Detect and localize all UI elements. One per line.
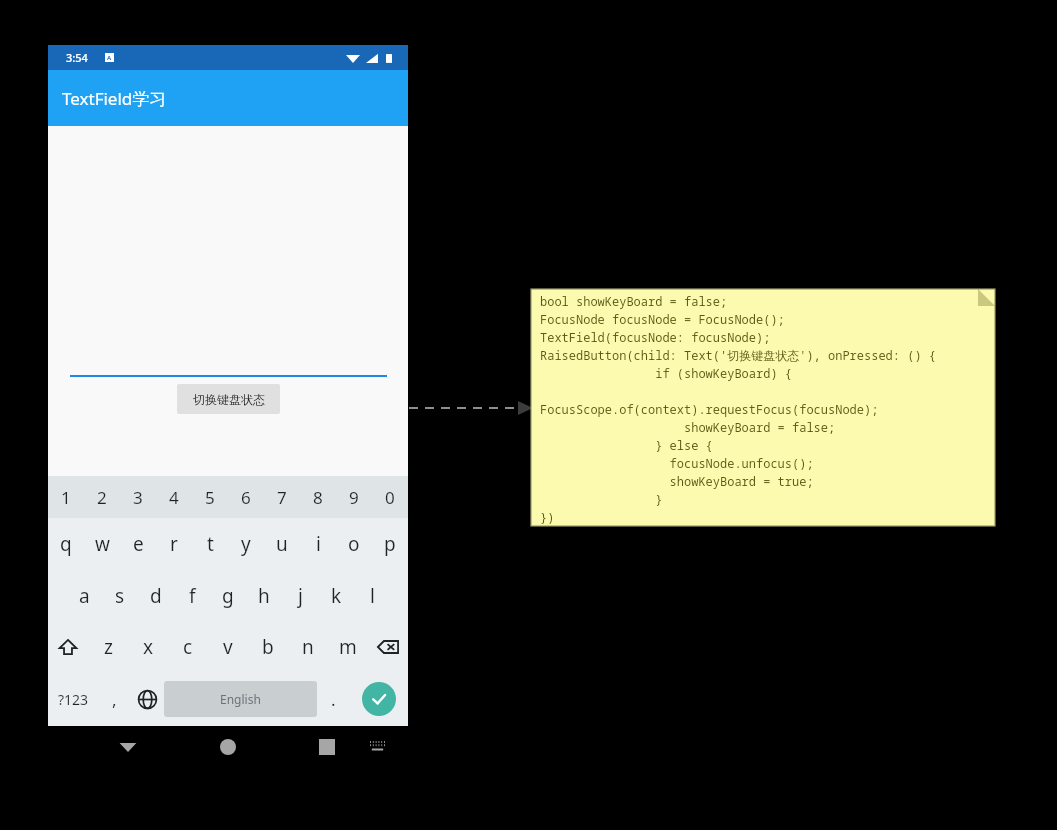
button[interactable]: Enter (350, 672, 408, 726)
staticText: y (241, 531, 251, 557)
staticText: w (95, 531, 110, 557)
staticText: . (331, 688, 336, 711)
button[interactable]: 0 (372, 476, 408, 518)
staticText: 切换键盘状态 (193, 392, 265, 407)
staticText: 3:54 (66, 50, 88, 65)
button[interactable]: English (164, 681, 317, 717)
staticText: m (339, 634, 357, 660)
button[interactable]: 8 (300, 476, 336, 518)
staticText: 7 (277, 486, 287, 509)
button[interactable]: Hide keyboard (118, 740, 138, 754)
button[interactable]: f (174, 570, 210, 622)
button[interactable]: y (228, 518, 264, 570)
button[interactable]: , (98, 672, 131, 726)
button[interactable]: Switch keyboard (369, 741, 386, 753)
button[interactable]: z (88, 622, 128, 672)
button[interactable]: a (66, 570, 102, 622)
button[interactable]: h (246, 570, 282, 622)
button[interactable]: t (192, 518, 228, 570)
staticText: r (170, 531, 178, 557)
staticText: p (384, 531, 396, 557)
staticText: q (60, 531, 72, 557)
staticText: 5 (205, 486, 215, 509)
staticText: 9 (349, 486, 359, 509)
button[interactable]: 切换键盘状态 (177, 384, 280, 414)
staticText: TextField(focusNode: focusNode); (540, 329, 771, 347)
button[interactable]: 9 (336, 476, 372, 518)
staticText: a (79, 583, 90, 609)
staticText: c (183, 634, 193, 660)
button[interactable]: j (282, 570, 318, 622)
button[interactable]: w (84, 518, 120, 570)
button[interactable]: 3 (120, 476, 156, 518)
staticText: English (220, 691, 261, 707)
staticText: k (331, 583, 342, 609)
staticText: n (302, 634, 314, 660)
button[interactable]: o (336, 518, 372, 570)
staticText: i (316, 531, 321, 557)
staticText: } else { (540, 437, 713, 455)
button[interactable]: k (318, 570, 354, 622)
staticText: v (223, 634, 233, 660)
staticText: b (262, 634, 274, 660)
staticText: h (258, 583, 270, 609)
staticText: A (107, 54, 112, 62)
button[interactable]: 7 (264, 476, 300, 518)
staticText: showKeyBoard = true; (540, 473, 814, 491)
button[interactable]: l (354, 570, 390, 622)
staticText: 1 (61, 486, 71, 509)
staticText: 4 (169, 486, 179, 509)
staticText: l (370, 583, 375, 609)
staticText: if (showKeyBoard) { (540, 365, 793, 383)
staticText: d (150, 583, 162, 609)
button[interactable]: 5 (192, 476, 228, 518)
button[interactable]: i (300, 518, 336, 570)
staticText: 3 (133, 486, 143, 509)
staticText: ?123 (58, 690, 89, 709)
staticText: u (276, 531, 288, 557)
button[interactable]: 6 (228, 476, 264, 518)
button[interactable]: e (120, 518, 156, 570)
button[interactable]: ?123 (48, 672, 98, 726)
staticText: FocusNode focusNode = FocusNode(); (540, 311, 785, 329)
button[interactable]: Shift (48, 622, 88, 672)
staticText: 0 (385, 486, 395, 509)
button[interactable]: p (372, 518, 408, 570)
button[interactable]: s (102, 570, 138, 622)
staticText: 8 (313, 486, 323, 509)
staticText: 2 (97, 486, 107, 509)
staticText: bool showKeyBoard = false; (540, 293, 728, 311)
button[interactable]: Backspace (368, 622, 408, 672)
staticText: FocusScope.of(context).requestFocus(focu… (540, 401, 879, 419)
staticText: g (222, 583, 234, 609)
button[interactable]: . (317, 672, 350, 726)
staticText: z (104, 634, 113, 660)
staticText: o (348, 531, 360, 557)
button[interactable]: r (156, 518, 192, 570)
button[interactable]: 4 (156, 476, 192, 518)
button[interactable]: n (288, 622, 328, 672)
staticText: e (133, 531, 144, 557)
button[interactable]: u (264, 518, 300, 570)
button[interactable]: g (210, 570, 246, 622)
button[interactable]: d (138, 570, 174, 622)
staticText: 6 (241, 486, 251, 509)
button[interactable]: Change language (131, 672, 164, 726)
button[interactable]: x (128, 622, 168, 672)
button[interactable]: v (208, 622, 248, 672)
staticText: }) (540, 509, 555, 526)
staticText: s (115, 583, 125, 609)
button[interactable]: Home (220, 739, 236, 755)
button[interactable]: 1 (48, 476, 84, 518)
staticText: TextField学习 (62, 87, 167, 110)
button[interactable]: b (248, 622, 288, 672)
staticText: , (112, 688, 117, 711)
button[interactable]: m (328, 622, 368, 672)
staticText: } (540, 491, 663, 509)
button[interactable]: 2 (84, 476, 120, 518)
staticText: t (207, 531, 214, 557)
button[interactable]: q (48, 518, 84, 570)
button[interactable]: c (168, 622, 208, 672)
